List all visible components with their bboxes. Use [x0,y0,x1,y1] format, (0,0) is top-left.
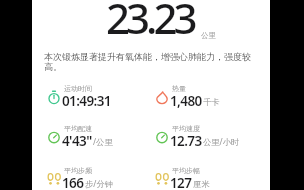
staticText: 热量 [172,84,186,93]
staticText: 平均步幅 [172,166,200,175]
staticText: 公里 [201,31,216,40]
staticText: 公里/小时 [203,136,240,147]
button[interactable]: 运动时间 [44,88,148,112]
staticText: 厘米 [193,179,210,189]
staticText: 千卡 [203,97,220,107]
staticText: 23.23 [106,0,194,46]
staticText: 平均步频 [64,166,92,175]
staticText: /公里 [93,136,113,147]
staticText: 步/分钟 [85,178,113,189]
staticText: 01:49:31 [62,92,111,110]
button[interactable]: 平均步幅 [152,170,256,190]
button[interactable]: 平均配速 [44,128,148,152]
staticText: 1,480 [170,92,202,110]
staticText: 本次锻炼显著提升有氧体能，增强心肺能力，强度较高。 [44,51,258,73]
button[interactable]: 平均步频 [44,170,148,190]
staticText: 平均速度 [172,124,200,133]
staticText: 166 [62,174,84,190]
staticText: 127 [170,174,192,190]
button[interactable]: 平均速度 [152,128,256,152]
staticText: 4'43" [62,132,92,150]
button[interactable]: 热量 [152,88,256,112]
staticText: 12.73 [170,132,202,150]
staticText: 运动时间 [64,84,92,93]
staticText: 平均配速 [64,124,92,133]
